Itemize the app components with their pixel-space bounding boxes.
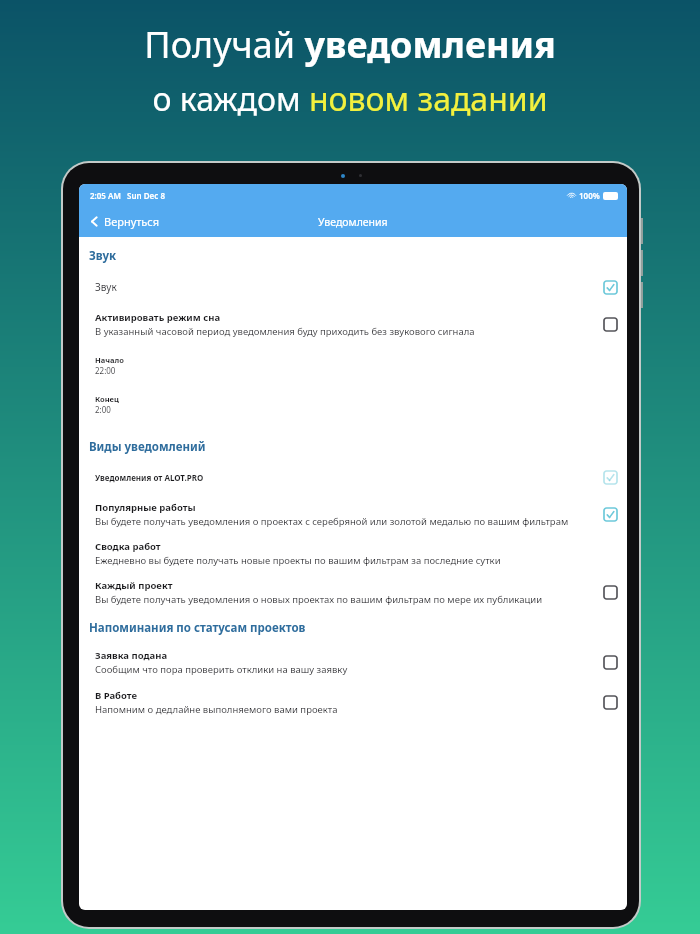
staticText: Получай уведомления [144,20,556,69]
staticText: 22:00 [95,365,116,376]
staticText: 100% [579,190,600,201]
button[interactable]: Уведомления от ALOT.PRO [79,471,627,484]
staticText: Ежедневно вы будете получать новые проек… [95,554,501,567]
other: Checked [604,471,617,484]
other: Unchecked [604,318,617,331]
other: Unchecked [604,656,617,669]
staticText: Сводка работ [95,540,161,553]
staticText: Вернуться [104,214,160,229]
staticText: Виды уведомлений [89,439,206,455]
staticText: Звук [95,280,117,294]
staticText: Вы будете получать уведомления о проекта… [95,515,569,528]
other: Unchecked [604,696,617,709]
button[interactable]: Вернуться [85,209,164,234]
staticText: Начало [95,355,124,365]
button[interactable]: Сводка работ [79,540,627,567]
button[interactable]: В Работе [79,689,627,716]
other: Checked [604,508,617,521]
button[interactable]: Звук [79,280,627,294]
staticText: Популярные работы [95,501,196,514]
staticText: Конец [95,394,119,404]
staticText: о каждом новом задании [152,77,548,121]
staticText: Заявка подана [95,649,168,662]
staticText: Сообщим что пора проверить отклики на ва… [95,663,348,676]
staticText: 2:00 [95,404,111,415]
staticText: Звук [89,248,117,264]
staticText: 2:05 AM Sun Dec 8 [90,190,165,201]
staticText: Каждый проект [95,579,173,592]
staticText: Активировать режим сна [95,311,221,324]
staticText: В Работе [95,689,138,702]
staticText: Уведомления от ALOT.PRO [95,472,204,483]
staticText: Напоминания по статусам проектов [89,620,306,636]
button[interactable]: Заявка подана [79,649,627,676]
staticText: Вы будете получать уведомления о новых п… [95,593,543,606]
button[interactable]: Каждый проект [79,579,627,606]
other: Unchecked [604,586,617,599]
button[interactable]: Начало [79,355,627,376]
staticText: В указанный часовой период уведомления б… [95,325,475,338]
other: Checked [604,281,617,294]
button[interactable]: Активировать режим сна [79,311,627,338]
staticText: Уведомления [318,215,388,229]
button[interactable]: Популярные работы [79,501,627,528]
staticText: Напомним о дедлайне выполняемого вами пр… [95,703,338,716]
button[interactable]: Конец [79,394,627,415]
